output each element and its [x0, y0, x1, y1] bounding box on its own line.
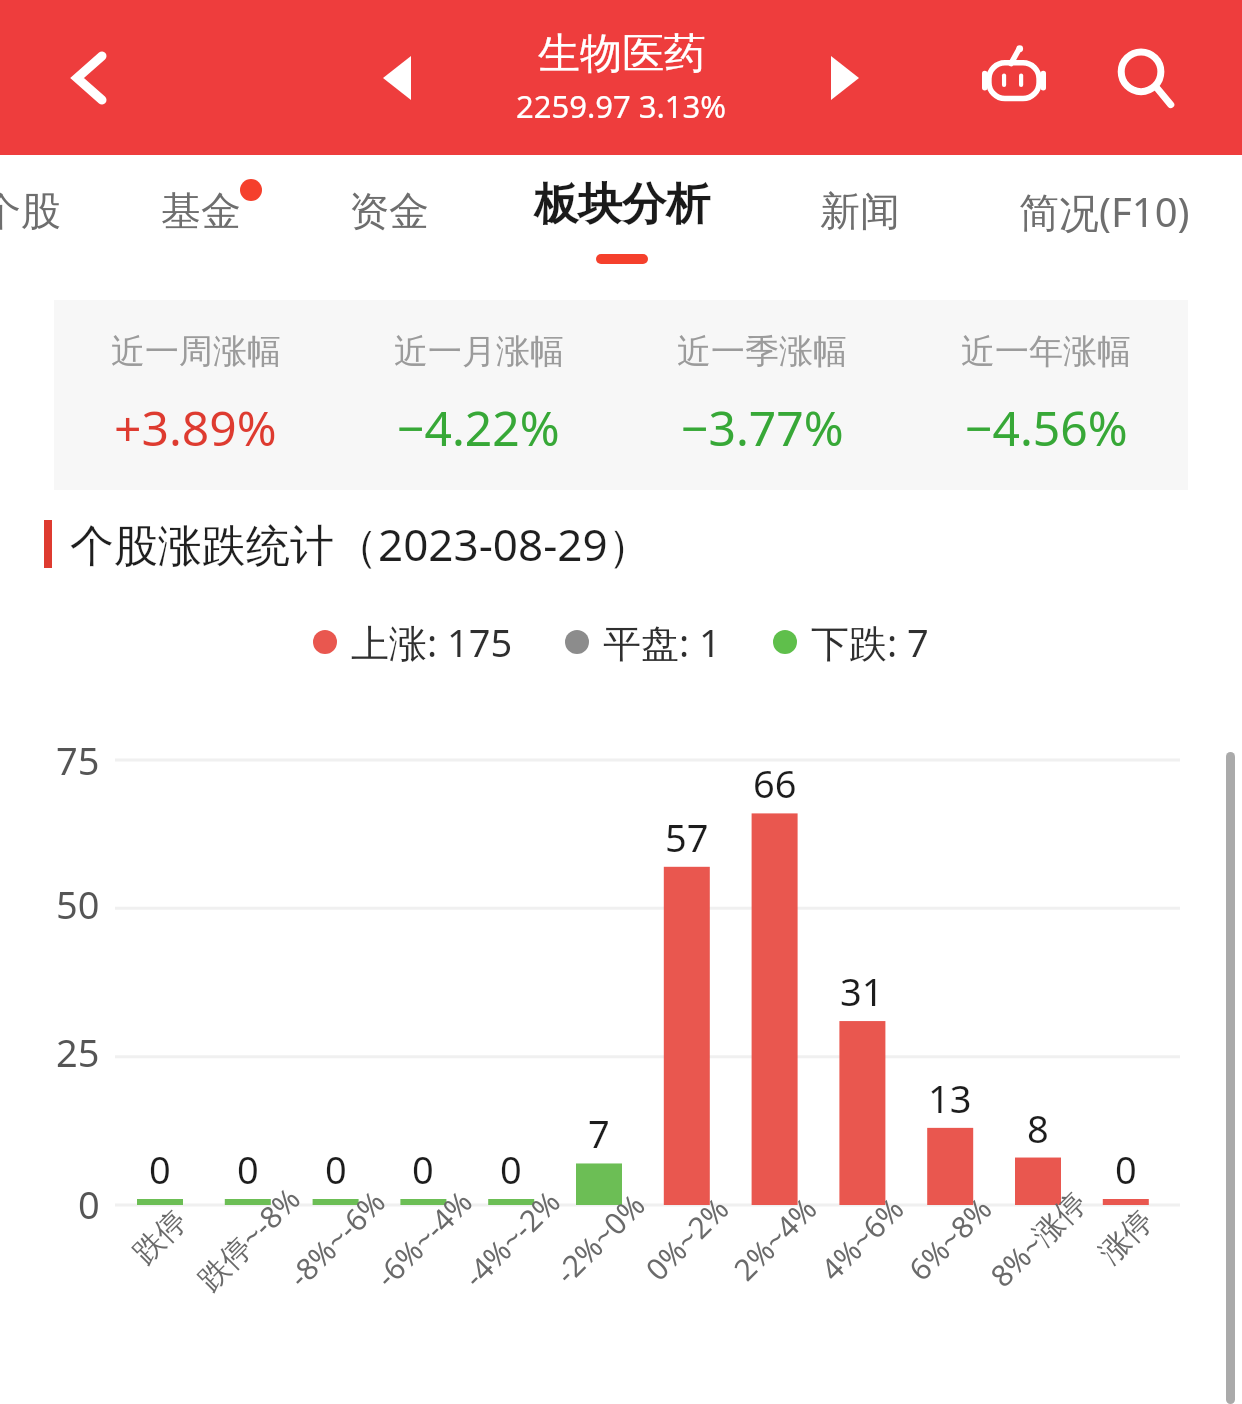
button[interactable]: Back: [42, 30, 138, 126]
button[interactable]: 上涨: 175: [313, 616, 513, 668]
staticText: 0%~2%: [636, 1188, 737, 1289]
staticText: 涨停: [1091, 1202, 1161, 1272]
staticText: 25: [56, 1026, 100, 1078]
button[interactable]: Next sector: [800, 33, 890, 123]
button[interactable]: Previous sector: [352, 33, 442, 123]
staticText: 4%~6%: [811, 1188, 912, 1289]
staticText: 0: [412, 1143, 434, 1195]
staticText: 2%~4%: [724, 1188, 825, 1289]
staticText: 平盘: 1: [603, 616, 721, 668]
staticText: 近一月涨幅: [394, 330, 564, 373]
staticText: 31: [840, 965, 884, 1017]
staticText: -2%~0%: [546, 1185, 653, 1292]
staticText: 基金: [161, 186, 241, 236]
staticText: 跌停: [125, 1202, 195, 1272]
staticText: 57: [665, 811, 709, 863]
staticText: -6%~-4%: [366, 1181, 481, 1296]
button[interactable]: Search: [1094, 26, 1198, 130]
staticText: 近一周涨幅: [111, 330, 281, 373]
staticText: 上涨: 175: [351, 616, 513, 668]
staticText: 0: [325, 1143, 347, 1195]
staticText: 个股: [0, 186, 61, 236]
staticText: 近一年涨幅: [961, 330, 1131, 373]
staticText: 0: [500, 1143, 522, 1195]
staticText: 75: [56, 734, 100, 786]
staticText: 生物医药: [538, 28, 706, 81]
staticText: −3.77%: [681, 395, 844, 460]
staticText: 新闻: [820, 186, 900, 236]
staticText: 资金: [349, 186, 429, 236]
staticText: 2259.97 3.13%: [516, 85, 727, 127]
button[interactable]: 新闻: [796, 165, 924, 257]
button[interactable]: 近一季涨幅: [620, 300, 904, 490]
staticText: 0: [237, 1143, 259, 1195]
staticText: 50: [56, 878, 100, 930]
button[interactable]: 个股: [0, 165, 76, 257]
staticText: 0: [149, 1143, 171, 1195]
staticText: −4.22%: [397, 395, 560, 460]
staticText: -8%~-6%: [279, 1181, 394, 1296]
button[interactable]: 近一周涨幅: [54, 300, 337, 490]
staticText: 8%~涨停: [981, 1182, 1095, 1295]
button[interactable]: AI assistant: [962, 26, 1066, 130]
button[interactable]: 近一年涨幅: [904, 300, 1188, 490]
button[interactable]: 近一月涨幅: [337, 300, 620, 490]
staticText: 近一季涨幅: [677, 330, 847, 373]
staticText: 8: [1027, 1102, 1049, 1154]
staticText: 6%~8%: [899, 1188, 1000, 1289]
staticText: +3.89%: [114, 395, 277, 460]
button[interactable]: 简况(F10): [986, 165, 1222, 257]
staticText: 13: [928, 1072, 972, 1124]
button[interactable]: 资金: [326, 165, 452, 257]
staticText: 跌停~-8%: [188, 1178, 309, 1299]
staticText: 下跌: 7: [811, 616, 929, 668]
staticText: 个股涨跌统计（2023-08-29）: [70, 514, 652, 574]
staticText: 66: [753, 757, 797, 809]
button[interactable]: 下跌: 7: [773, 616, 929, 668]
staticText: 0: [1115, 1143, 1137, 1195]
staticText: 7: [588, 1107, 610, 1159]
button[interactable]: 平盘: 1: [565, 616, 721, 668]
button[interactable]: 板块分析: [516, 155, 728, 285]
staticText: -4%~-2%: [454, 1181, 569, 1296]
staticText: 0: [78, 1178, 100, 1230]
staticText: 板块分析: [534, 177, 710, 232]
staticText: −4.56%: [965, 395, 1128, 460]
staticText: 简况(F10): [1019, 184, 1190, 239]
button[interactable]: 基金: [138, 165, 264, 257]
